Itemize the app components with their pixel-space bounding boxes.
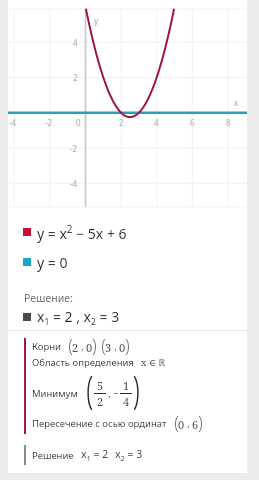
- staticText: -4: [9, 117, 17, 128]
- staticText: −: [113, 387, 119, 399]
- staticText: -2: [70, 143, 78, 154]
- staticText: 2: [73, 72, 78, 83]
- staticText: Пересечение с осью ординат: [32, 417, 167, 430]
- staticText: 0: [76, 117, 81, 128]
- button[interactable]: Решение: [28, 444, 188, 466]
- button[interactable]: Graph of y = x squared minus 5x plus 6: [8, 0, 247, 208]
- button[interactable]: y = x2 − 5x + 6: [18, 218, 168, 246]
- staticText: x ∈ ℝ: [141, 356, 166, 369]
- staticText: 2: [97, 394, 104, 409]
- staticText: 8: [226, 117, 231, 128]
- button[interactable]: x1 = 2 , x2 = 3: [18, 303, 158, 331]
- staticText: Решение:: [24, 291, 73, 305]
- staticText: 1: [123, 378, 130, 393]
- button[interactable]: Область определения: [28, 353, 183, 371]
- staticText: 0: [119, 340, 126, 355]
- staticText: 4: [73, 37, 78, 48]
- staticText: 6: [190, 117, 195, 128]
- staticText: ,: [112, 341, 119, 353]
- staticText: ,: [79, 341, 86, 353]
- staticText: x1 = 2 , x2 = 3: [37, 307, 120, 328]
- staticText: Решение: [32, 449, 74, 462]
- staticText: 0: [86, 340, 93, 355]
- staticText: -4: [70, 178, 78, 189]
- staticText: x: [234, 97, 239, 109]
- staticText: 3: [105, 340, 112, 355]
- staticText: y = 0: [37, 253, 68, 272]
- staticText: Минимум: [32, 387, 78, 400]
- staticText: y = x2 − 5x + 6: [37, 222, 127, 243]
- staticText: 4: [123, 394, 130, 409]
- button[interactable]: Пересечение с осью ординат: [28, 414, 228, 433]
- staticText: 4: [154, 117, 159, 128]
- staticText: ,: [106, 387, 113, 399]
- staticText: x1 = 2: [81, 447, 109, 463]
- button[interactable]: y = 0: [18, 248, 118, 276]
- staticText: 6: [192, 417, 199, 432]
- staticText: 2: [72, 340, 79, 355]
- button[interactable]: Минимум: [28, 374, 148, 412]
- staticText: 5: [97, 378, 104, 393]
- staticText: ,: [185, 418, 192, 430]
- staticText: x2 = 3: [115, 447, 143, 463]
- staticText: y: [94, 15, 99, 27]
- staticText: -2: [45, 117, 53, 128]
- staticText: Корни: [32, 340, 61, 353]
- staticText: 0: [178, 417, 185, 432]
- staticText: 2: [119, 117, 124, 128]
- button[interactable]: Корни: [28, 337, 143, 356]
- staticText: Область определения: [32, 356, 134, 369]
